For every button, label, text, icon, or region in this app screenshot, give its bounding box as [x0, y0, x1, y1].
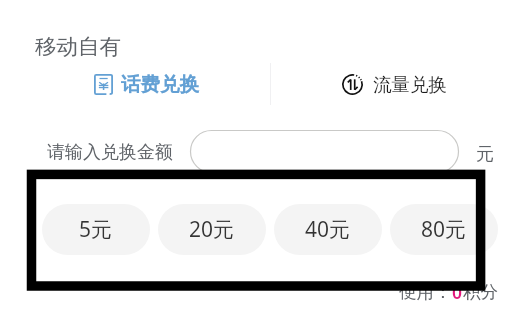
button[interactable]: 20元	[158, 204, 266, 255]
button[interactable]: Data recharge	[342, 62, 447, 106]
staticText: 元	[476, 143, 494, 166]
other: Data recharge	[342, 74, 363, 95]
button[interactable]: 5元	[42, 204, 150, 255]
staticText: 40元	[305, 215, 351, 244]
staticText: 5元	[79, 215, 113, 244]
button[interactable]: 80元	[390, 204, 498, 255]
staticText: 积分	[463, 281, 498, 303]
staticText: 移动自有	[35, 33, 121, 60]
staticText: 流量兑换	[373, 73, 447, 96]
other: Bill recharge	[94, 74, 113, 95]
button[interactable]	[190, 130, 459, 173]
staticText: 0	[452, 280, 463, 304]
button[interactable]: Bill recharge	[94, 62, 199, 106]
staticText: 请输入兑换金额	[47, 141, 173, 164]
staticText: 20元	[189, 215, 235, 244]
button[interactable]: 40元	[274, 204, 382, 255]
staticText: 话费兑换	[121, 72, 199, 97]
staticText: 使用：	[399, 281, 452, 303]
staticText: 80元	[421, 215, 467, 244]
